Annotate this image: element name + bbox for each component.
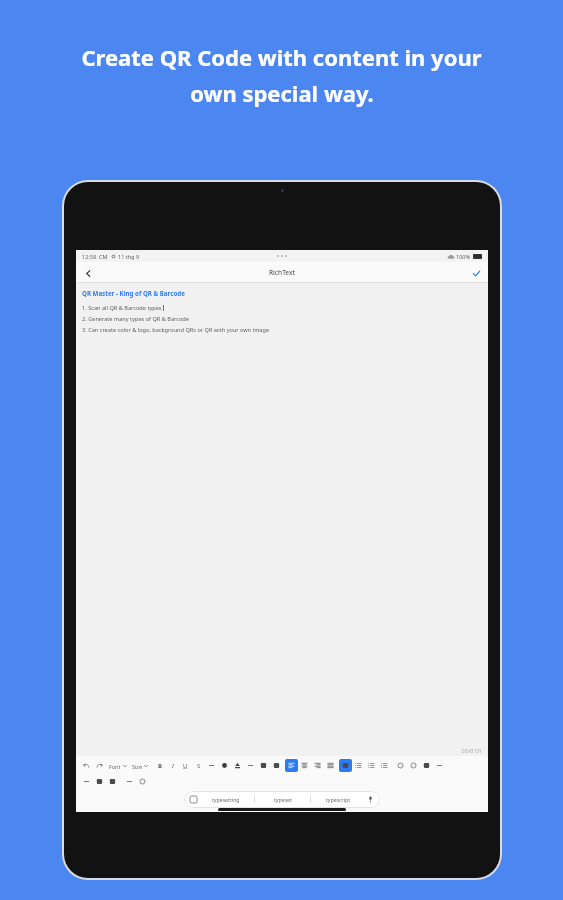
staticText: typesetting [212,796,240,803]
button[interactable]: Square A [257,759,270,772]
button[interactable]: Quote [93,775,106,788]
button[interactable]: Image [420,759,433,772]
button[interactable]: Code block [106,775,119,788]
button[interactable]: Redo [93,759,106,772]
button[interactable]: Align right [311,759,324,772]
staticText: RichText [269,268,295,277]
button[interactable]: Link [394,759,407,772]
button[interactable]: typeset [255,791,310,808]
button[interactable]: Keyboard settings [189,795,198,804]
staticText: Font [109,763,121,770]
staticText: own special way. [190,78,374,108]
staticText: S [197,762,201,770]
button[interactable]: Search [136,775,149,788]
button[interactable]: Bulleted list [352,759,365,772]
staticText: typescript [326,796,351,803]
button[interactable]: Italic [166,759,179,772]
staticText: 2. Generate many types of QR & Barcode [82,315,189,323]
button[interactable]: Subscript [244,759,257,772]
staticText: typeset [274,796,292,803]
button[interactable]: Line spacing [339,759,352,772]
button[interactable]: Voice input [366,795,375,804]
button[interactable]: Undo [80,759,93,772]
button[interactable]: QR Master - King of QR & Barcode [76,283,488,756]
staticText: CM [99,253,108,260]
staticText: Size [132,763,142,770]
button[interactable]: Highlight [231,759,244,772]
button[interactable]: Underline [179,759,192,772]
button[interactable]: Font [109,760,127,772]
button[interactable]: Align left [285,759,298,772]
button[interactable]: Align center [298,759,311,772]
staticText: 03:47 CH [462,748,482,754]
staticText: QR Master - King of QR & Barcode [82,289,185,297]
button[interactable]: Text color [218,759,231,772]
button[interactable]: More [433,759,446,772]
button[interactable]: Find [123,775,136,788]
button[interactable]: Clear format [205,759,218,772]
staticText: 11 thg 9 [118,253,140,260]
staticText: 1. Scan all QR & Barcode types [82,304,162,312]
staticText: 3. Can create color & logo, background Q… [82,326,270,334]
button[interactable]: Attach [80,775,93,788]
button[interactable]: Size [132,760,148,772]
button[interactable]: Indent [378,759,391,772]
button[interactable]: Square B [270,759,283,772]
button[interactable]: Done [468,265,484,281]
button[interactable]: Back [80,265,96,281]
staticText: I [172,762,174,770]
staticText: 100% [456,253,471,260]
staticText: B [158,762,162,770]
staticText: 12:58 [82,253,97,260]
button[interactable]: typescript [311,791,366,808]
button[interactable]: Justify [324,759,337,772]
button[interactable]: Bold [153,759,166,772]
staticText: Create QR Code with content in your [81,42,482,72]
button[interactable]: Table [407,759,420,772]
button[interactable]: typesetting [198,791,254,808]
button[interactable]: Numbered list [365,759,378,772]
staticText: U [183,762,188,770]
button[interactable]: Strikethrough [192,759,205,772]
